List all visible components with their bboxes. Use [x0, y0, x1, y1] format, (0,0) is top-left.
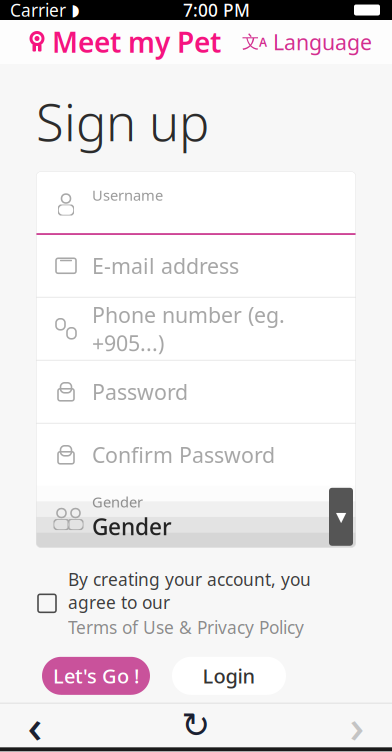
button[interactable]: Confirm Password	[36, 424, 356, 486]
button[interactable]: Reload	[166, 705, 226, 745]
staticText: Confirm Password	[92, 441, 275, 469]
button[interactable]: E-mail address	[36, 235, 356, 298]
button[interactable]: Gender	[36, 486, 356, 548]
staticText: Gender	[92, 511, 172, 542]
staticText: A	[259, 34, 267, 50]
staticText: ›	[349, 695, 364, 752]
staticText: Phone number (eg. +905...)	[92, 300, 285, 357]
staticText: Sign up	[36, 88, 209, 155]
staticText: ◗	[71, 1, 79, 19]
button[interactable]: Phone number (eg. +905...)	[36, 298, 356, 361]
button[interactable]: Forward	[322, 705, 392, 745]
staticText: 7:00 PM	[183, 0, 250, 21]
staticText: Gender	[92, 492, 143, 511]
button[interactable]: Password	[36, 361, 356, 424]
staticText: Username	[92, 185, 163, 205]
staticText: Login	[202, 663, 255, 689]
staticText: ▼	[336, 509, 346, 524]
button[interactable]: 文	[242, 20, 392, 64]
staticText: E-mail address	[92, 252, 239, 280]
button[interactable]: Username	[36, 171, 356, 235]
staticText: Let's Go !	[53, 663, 139, 689]
staticText: Meet my Pet	[52, 23, 221, 61]
staticText: Carrier	[10, 0, 66, 21]
staticText: ‹	[27, 695, 42, 752]
button[interactable]: Let's Go !	[42, 657, 150, 695]
staticText: ↻	[181, 706, 210, 745]
button[interactable]: Login	[172, 657, 286, 695]
staticText: Language	[273, 28, 372, 56]
button[interactable]: By creating your account, you agree to o…	[0, 548, 392, 639]
staticText: By creating your account, you agree to o…	[68, 568, 311, 614]
staticText: Terms of Use & Privacy Policy	[68, 616, 304, 639]
button[interactable]: Back	[0, 705, 70, 745]
staticText: 文	[242, 31, 259, 53]
staticText: Password	[92, 378, 188, 406]
button[interactable]: Meet my Pet	[0, 15, 221, 69]
